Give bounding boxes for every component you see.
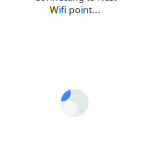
staticText: Connecting to Nest Wifi point... — [34, 0, 116, 16]
